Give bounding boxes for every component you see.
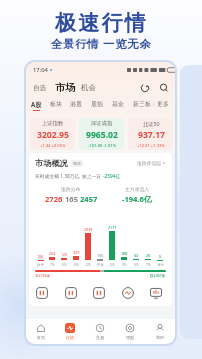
staticText: -2594亿 <box>103 173 121 180</box>
button[interactable]: 港股 <box>70 100 82 108</box>
button[interactable]: 龙虎榜 <box>93 287 105 299</box>
staticText: 5 <box>159 254 162 259</box>
staticText: 全景行情 一览无余 <box>51 36 152 51</box>
staticText: 3202.95 <box>37 129 69 141</box>
staticText: -5% <box>61 262 67 267</box>
staticText: 主力净流入 <box>125 186 149 192</box>
button[interactable]: 涨跌停追踪 <box>137 160 166 166</box>
staticText: | <box>152 100 156 107</box>
staticText: +12.31 +1.33% <box>137 143 165 149</box>
staticText: 9965.02 <box>86 129 118 141</box>
staticText: 106 <box>37 254 44 259</box>
staticText: -194.6亿 <box>122 194 152 204</box>
button[interactable]: 板块 <box>50 100 62 108</box>
staticText: 概览 <box>73 161 81 166</box>
staticText: -7% <box>49 262 55 267</box>
button[interactable]: 市场情绪 <box>122 287 134 299</box>
staticText: 我的 <box>156 335 164 340</box>
staticText: 2049 <box>84 227 93 232</box>
button[interactable]: 行情 <box>55 319 85 344</box>
staticText: +1.44 +0.05% <box>40 143 66 149</box>
staticText: -3% <box>73 262 79 267</box>
button[interactable]: A股 <box>31 100 42 111</box>
button[interactable]: 自选 <box>33 84 47 92</box>
staticText: -2% <box>85 262 91 267</box>
button[interactable]: 北证50 <box>128 118 173 150</box>
staticText: 涨停 <box>157 263 164 267</box>
staticText: 首页 <box>37 335 45 340</box>
staticText: 165 <box>63 194 80 204</box>
button[interactable]: 首页 <box>26 319 55 344</box>
staticText: 跌停 <box>37 263 44 267</box>
staticText: 937.17 <box>138 129 165 141</box>
staticText: 涨跌停追踪 <box>137 160 161 166</box>
button[interactable]: 基金 <box>112 100 124 108</box>
button[interactable]: 大盘看板 <box>150 287 162 299</box>
staticText: 理财 <box>126 335 134 340</box>
staticText: 53 <box>134 253 139 258</box>
staticText: 极速行情 <box>55 10 148 36</box>
staticText: 165 <box>97 253 104 258</box>
button[interactable]: 理财 <box>115 319 145 344</box>
staticText: 交易 <box>96 335 104 340</box>
staticText: 3% <box>122 262 127 267</box>
staticText: 跌2457家 <box>150 273 166 278</box>
button[interactable]: 更多 <box>157 100 169 108</box>
staticText: 7% <box>146 262 151 267</box>
button[interactable]: Night mode <box>140 83 149 92</box>
staticText: 329 <box>73 250 80 255</box>
staticText: 5% <box>134 262 139 267</box>
button[interactable]: 市场 <box>55 81 75 94</box>
staticText: 深证成指 <box>91 120 113 127</box>
staticText: 实时成交额 1.38万亿, 较上一日 <box>35 173 103 180</box>
staticText: 平盘 <box>97 263 104 267</box>
staticText: 涨2726家 <box>35 273 51 278</box>
staticText: -101.49 -1.01% <box>88 143 117 149</box>
button[interactable]: 交易 <box>85 319 115 344</box>
staticText: 上证指数 <box>42 120 64 127</box>
button[interactable]: 涨跌分析 <box>36 287 48 299</box>
staticText: 涨跌分布 <box>61 186 81 192</box>
button[interactable]: 深证成指 <box>79 118 124 150</box>
button[interactable]: 股指 <box>91 100 103 108</box>
staticText: 20 <box>146 253 151 258</box>
staticText: 2726 <box>45 194 63 204</box>
staticText: 17:04 <box>33 66 48 74</box>
staticText: 2457 <box>80 194 98 204</box>
staticText: A股 <box>31 100 42 108</box>
button[interactable]: 我的 <box>145 319 175 344</box>
button[interactable]: 上证指数 <box>30 118 75 150</box>
button[interactable]: 新三板 <box>133 100 151 108</box>
staticText: 125 <box>61 252 68 257</box>
staticText: 188 <box>121 251 128 256</box>
staticText: 北证50 <box>143 120 160 127</box>
button[interactable]: 资金流向 <box>65 287 77 299</box>
button[interactable]: 机会 <box>81 83 96 92</box>
staticText: 市场概况 <box>35 158 68 168</box>
staticText: 行情 <box>66 335 74 340</box>
button[interactable]: Search <box>159 83 168 92</box>
staticText: 204 <box>49 251 56 256</box>
staticText: 2% <box>110 262 115 267</box>
staticText: 2177 <box>108 225 117 230</box>
